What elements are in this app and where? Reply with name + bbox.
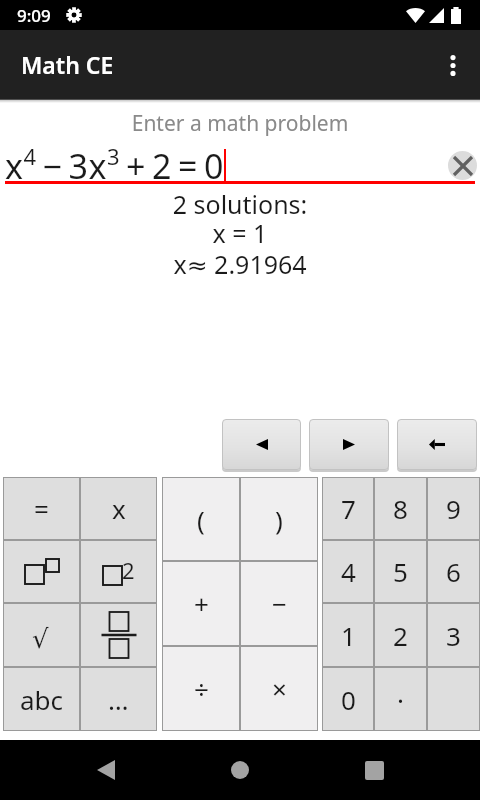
staticText: 4 — [341, 554, 356, 589]
staticText: 0 — [341, 682, 356, 717]
staticText: + — [194, 586, 209, 621]
staticText: 2 solutions: x = 1 x≈ 2.91964 — [0, 187, 480, 281]
button[interactable]: Recents — [346, 742, 402, 798]
staticText: Enter a math problem — [0, 109, 480, 138]
staticText: x — [112, 491, 126, 526]
other: Move left — [256, 439, 268, 450]
staticText: 2 — [393, 618, 408, 653]
staticText: 6 — [446, 554, 461, 589]
button[interactable]: Square root — [3, 603, 80, 667]
button[interactable]: 5 — [374, 540, 427, 603]
other: Backspace — [429, 439, 445, 450]
button[interactable]: + — [162, 561, 240, 646]
staticText: … — [108, 682, 129, 717]
button[interactable]: Backspace — [397, 419, 477, 470]
staticText: 1 — [341, 618, 356, 653]
button[interactable]: 2 — [374, 603, 427, 667]
button[interactable]: ( — [162, 477, 240, 561]
button[interactable]: Move cursor left — [222, 419, 301, 470]
other: Fraction — [101, 612, 137, 658]
button[interactable]: 0 — [322, 667, 374, 731]
button[interactable]: Square — [80, 540, 157, 603]
staticText: 2 — [122, 555, 135, 581]
staticText: × — [272, 671, 287, 706]
other: Power — [25, 559, 59, 584]
button[interactable]: More options — [431, 43, 475, 87]
button[interactable]: 4 — [322, 540, 374, 603]
button[interactable]: 6 — [427, 540, 480, 603]
staticText: ÷ — [194, 671, 209, 706]
other: Move right — [343, 439, 355, 450]
button[interactable]: x — [80, 477, 157, 540]
button[interactable]: 7 — [322, 477, 374, 540]
button[interactable]: abc — [3, 667, 80, 731]
staticText: ) — [275, 502, 283, 537]
button[interactable]: Fraction — [80, 603, 157, 667]
staticText: 9:09 — [17, 4, 51, 27]
staticText: 3 — [446, 618, 461, 653]
button[interactable]: − — [240, 561, 318, 646]
other: Square — [103, 559, 134, 585]
staticText: 7 — [341, 491, 356, 526]
button[interactable] — [427, 667, 480, 731]
staticText: ( — [197, 502, 205, 537]
staticText: 9 — [446, 491, 461, 526]
staticText: abc — [20, 682, 64, 717]
button[interactable]: · — [374, 667, 427, 731]
button[interactable]: 1 — [322, 603, 374, 667]
staticText: · — [397, 682, 404, 717]
button[interactable]: 9 — [427, 477, 480, 540]
button[interactable]: ) — [240, 477, 318, 561]
staticText: x4 − 3x3 + 2 = 0 — [5, 141, 224, 189]
staticText: − — [272, 586, 287, 621]
staticText: 8 — [393, 491, 408, 526]
button[interactable]: Back — [78, 742, 134, 798]
button[interactable]: Move cursor right — [309, 419, 389, 470]
staticText: 5 — [393, 554, 408, 589]
staticText: Math CE — [21, 49, 114, 80]
button[interactable]: 8 — [374, 477, 427, 540]
button[interactable]: Home — [212, 742, 268, 798]
button[interactable]: ÷ — [162, 646, 240, 731]
button[interactable]: Clear — [448, 151, 477, 180]
staticText: = — [34, 491, 49, 526]
button[interactable]: 3 — [427, 603, 480, 667]
staticText: √ — [32, 624, 49, 654]
button[interactable]: = — [3, 477, 80, 540]
button[interactable]: … — [80, 667, 157, 731]
button[interactable]: × — [240, 646, 318, 731]
button[interactable]: Power — [3, 540, 80, 603]
